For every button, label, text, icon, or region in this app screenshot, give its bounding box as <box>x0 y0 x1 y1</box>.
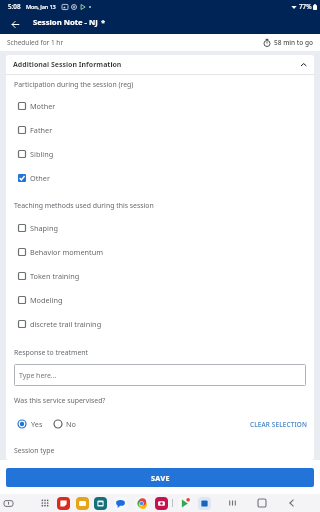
button[interactable]: Mother <box>6 94 314 118</box>
staticText: Scheduled for 1 hr <box>7 38 64 47</box>
button[interactable]: Shaping <box>6 216 314 240</box>
staticText: Yes <box>31 419 43 429</box>
staticText: Type here... <box>19 371 57 380</box>
staticText: Participation during the session (reg) <box>14 80 134 89</box>
staticText: * <box>101 17 106 27</box>
staticText: Additional Session Information <box>13 60 122 70</box>
staticText: Other <box>30 173 50 183</box>
button[interactable]: Recents <box>223 494 241 512</box>
staticText: 58 min to go <box>274 38 313 47</box>
staticText: CLEAR SELECTION <box>250 420 308 429</box>
button[interactable]: Yes <box>17 419 43 429</box>
button[interactable]: All apps <box>38 496 52 510</box>
button[interactable]: App <box>155 497 168 510</box>
staticText: Shaping <box>30 223 58 233</box>
button[interactable]: CLEAR SELECTION <box>250 420 308 429</box>
staticText: SAVE <box>151 473 170 483</box>
staticText: Mother <box>30 101 56 111</box>
button[interactable]: Sibling <box>6 142 314 166</box>
button[interactable]: App <box>76 497 89 510</box>
button[interactable]: Back <box>7 16 23 32</box>
button[interactable]: Father <box>6 118 314 142</box>
staticText: Session Note - NJ <box>33 17 98 27</box>
button[interactable]: Additional Session Information <box>6 55 314 74</box>
staticText: Session type <box>14 446 55 455</box>
staticText: Token training <box>30 271 80 281</box>
staticText: Father <box>30 125 53 135</box>
button[interactable]: App <box>178 497 191 510</box>
staticText: Sibling <box>30 149 54 159</box>
staticText: Modeling <box>30 295 63 305</box>
button[interactable]: Token training <box>6 264 314 288</box>
button[interactable]: App <box>135 497 148 510</box>
button[interactable]: App <box>198 497 211 510</box>
button[interactable]: Modeling <box>6 288 314 312</box>
staticText: Was this service supervised? <box>14 396 106 405</box>
button[interactable]: Home <box>253 494 271 512</box>
staticText: No <box>66 419 76 429</box>
staticText: Teaching methods used during this sessio… <box>14 201 154 210</box>
button[interactable]: App <box>57 497 70 510</box>
staticText: 5:08 <box>8 2 21 11</box>
staticText: Behavior momentum <box>30 247 104 257</box>
button[interactable]: Behavior momentum <box>6 240 314 264</box>
staticText: discrete trail training <box>30 319 102 329</box>
button[interactable]: discrete trail training <box>6 312 314 336</box>
button[interactable]: Type here... <box>14 364 306 386</box>
button[interactable]: Other <box>6 166 314 190</box>
button[interactable]: No <box>53 419 76 429</box>
button[interactable]: Back <box>282 494 300 512</box>
button[interactable]: Capture <box>1 496 15 510</box>
staticText: Mon, Jan 13 <box>26 3 56 11</box>
button[interactable]: SAVE <box>6 468 314 487</box>
button[interactable]: App <box>94 497 107 510</box>
staticText: 77% <box>299 2 312 11</box>
staticText: Response to treatment <box>14 348 89 357</box>
button[interactable]: App <box>114 497 127 510</box>
